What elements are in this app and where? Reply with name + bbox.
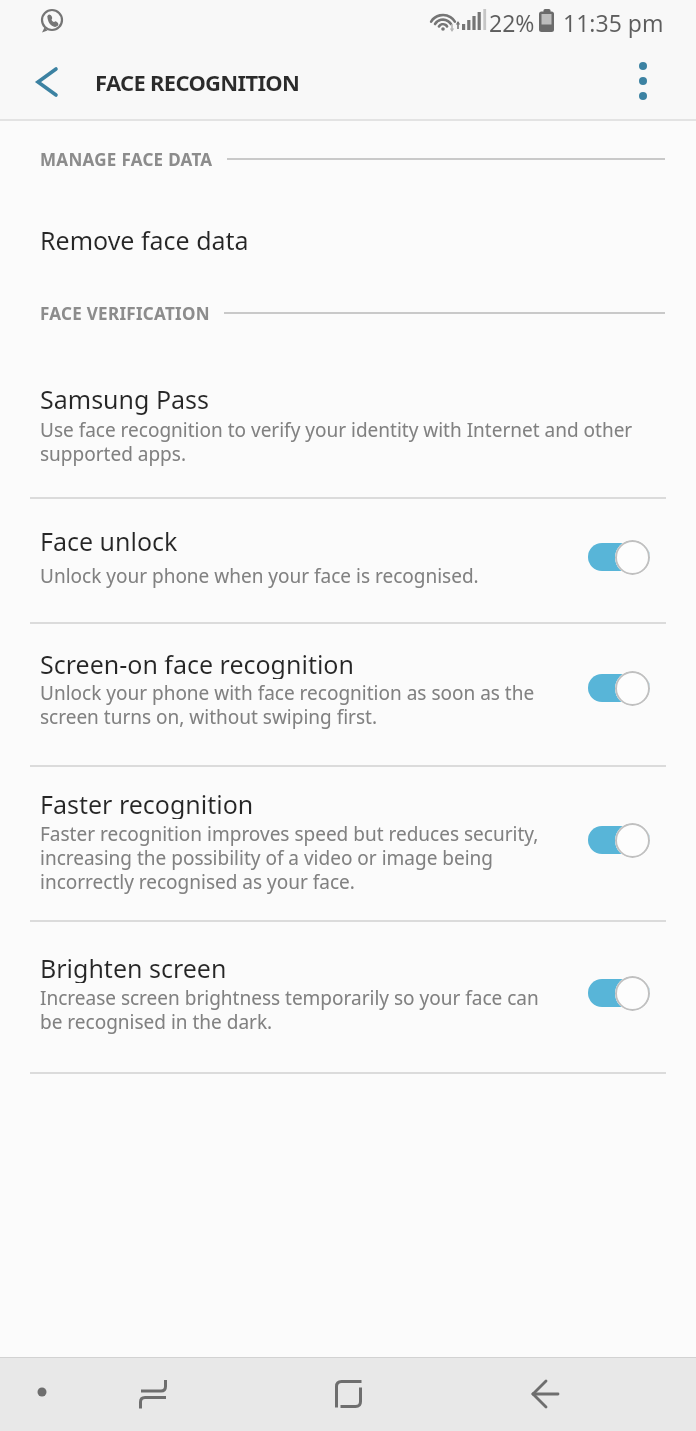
button[interactable] (515, 1362, 575, 1426)
button[interactable] (613, 51, 673, 111)
staticText: Faster recognition improves speed but re… (40, 821, 539, 894)
staticText: Unlock your phone with face recognition … (40, 680, 535, 729)
button[interactable] (123, 1362, 183, 1426)
button[interactable]: Faster recognition (0, 765, 696, 920)
button[interactable]: Remove face data (0, 190, 696, 286)
staticText: 11:35 pm (563, 7, 664, 38)
staticText: Face unlock (40, 524, 178, 556)
button[interactable]: Screen-on face recognition (0, 622, 696, 765)
staticText: Samsung Pass (40, 382, 209, 416)
staticText: 22% (489, 7, 535, 38)
staticText: FACE VERIFICATION (40, 302, 210, 325)
staticText: FACE RECOGNITION (95, 67, 300, 97)
staticText: Remove face data (40, 223, 249, 257)
staticText: Screen-on face recognition (40, 647, 354, 679)
staticText: Increase screen brightness temporarily s… (40, 985, 539, 1034)
button[interactable]: Brighten screen (0, 920, 696, 1072)
staticText: Unlock your phone when your face is reco… (40, 563, 479, 589)
staticText: MANAGE FACE DATA (40, 148, 213, 171)
staticText: Faster recognition (40, 787, 254, 819)
button[interactable] (318, 1362, 378, 1426)
staticText: Use face recognition to verify your iden… (40, 417, 633, 466)
staticText: Brighten screen (40, 951, 227, 983)
button[interactable] (17, 52, 77, 112)
button[interactable]: Face unlock (0, 497, 696, 622)
button[interactable]: Samsung Pass (0, 360, 696, 497)
